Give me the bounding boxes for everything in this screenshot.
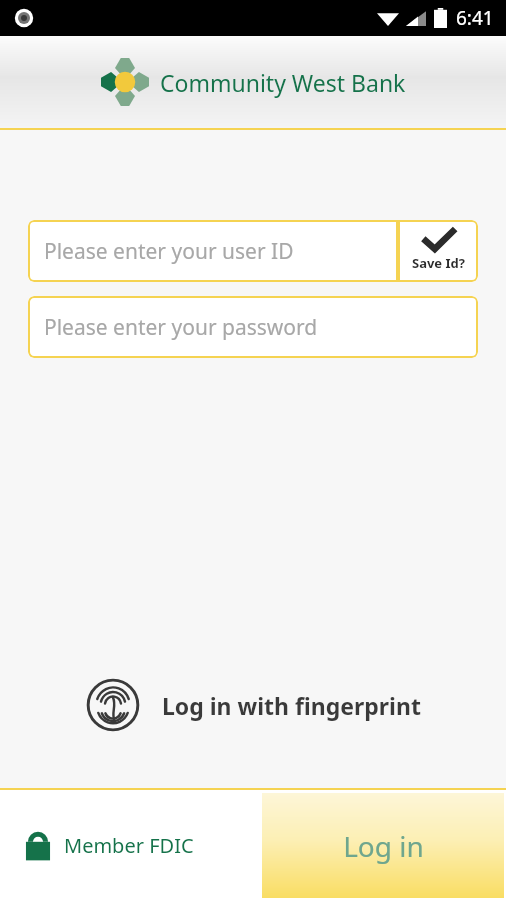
- button[interactable]: Save Id: [398, 220, 478, 282]
- button[interactable]: Please enter your password: [28, 296, 478, 358]
- staticText: Please enter your password: [44, 313, 318, 342]
- staticText: Log in: [343, 827, 424, 865]
- staticText: Member FDIC: [64, 832, 194, 859]
- staticText: Please enter your user ID: [44, 237, 294, 266]
- staticText: Log in with fingerprint: [162, 690, 421, 721]
- staticText: Community West Bank: [160, 67, 406, 98]
- button[interactable]: Log in with fingerprint: [0, 670, 506, 740]
- button[interactable]: Member FDIC: [24, 829, 194, 861]
- button[interactable]: Please enter your user ID: [28, 220, 398, 282]
- staticText: 6:41: [456, 5, 494, 31]
- staticText: Save Id?: [412, 254, 465, 272]
- button[interactable]: Log in: [262, 793, 504, 898]
